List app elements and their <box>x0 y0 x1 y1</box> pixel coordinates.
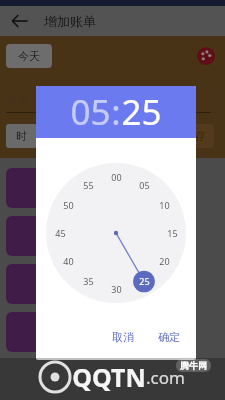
staticText: .com <box>146 366 185 389</box>
staticText: 腾牛网 <box>180 360 207 371</box>
button[interactable]: Back <box>8 9 32 33</box>
button[interactable]: 25 <box>121 88 162 136</box>
staticText: 15 <box>167 227 178 239</box>
button[interactable] <box>6 264 46 304</box>
staticText: 增加账单 <box>44 13 96 29</box>
staticText: 今天 <box>18 49 40 63</box>
staticText: 05 <box>70 88 111 136</box>
button[interactable]: 时 <box>6 124 37 148</box>
button[interactable] <box>6 312 46 352</box>
button[interactable]: 00 <box>46 163 186 303</box>
staticText: 05 <box>139 179 150 191</box>
staticText: 00 <box>111 171 122 183</box>
button[interactable]: 确定 <box>150 328 188 346</box>
staticText: 保存 <box>184 129 206 143</box>
button[interactable]: 今天 <box>6 44 52 68</box>
staticText: 35 <box>83 275 94 287</box>
staticText: 10 <box>159 199 170 211</box>
staticText: : <box>111 88 121 136</box>
button[interactable]: Palette <box>196 46 216 66</box>
staticText: 55 <box>83 179 94 191</box>
button[interactable]: 05 <box>70 88 111 136</box>
staticText: 时 <box>16 129 27 143</box>
staticText: 50 <box>63 199 74 211</box>
staticText: 25 <box>121 88 162 136</box>
button[interactable]: 保存 <box>176 124 214 148</box>
staticText: 45 <box>55 227 66 239</box>
staticText: 20 <box>159 255 170 267</box>
staticText: 取消 <box>112 330 134 344</box>
staticText: 25 <box>139 275 150 287</box>
staticText: QQTN <box>72 360 146 394</box>
staticText: 30 <box>111 283 122 295</box>
button[interactable] <box>6 216 46 256</box>
button[interactable]: 取消 <box>104 328 142 346</box>
staticText: 确定 <box>158 330 180 344</box>
staticText: 40 <box>63 255 74 267</box>
button[interactable] <box>6 168 46 208</box>
